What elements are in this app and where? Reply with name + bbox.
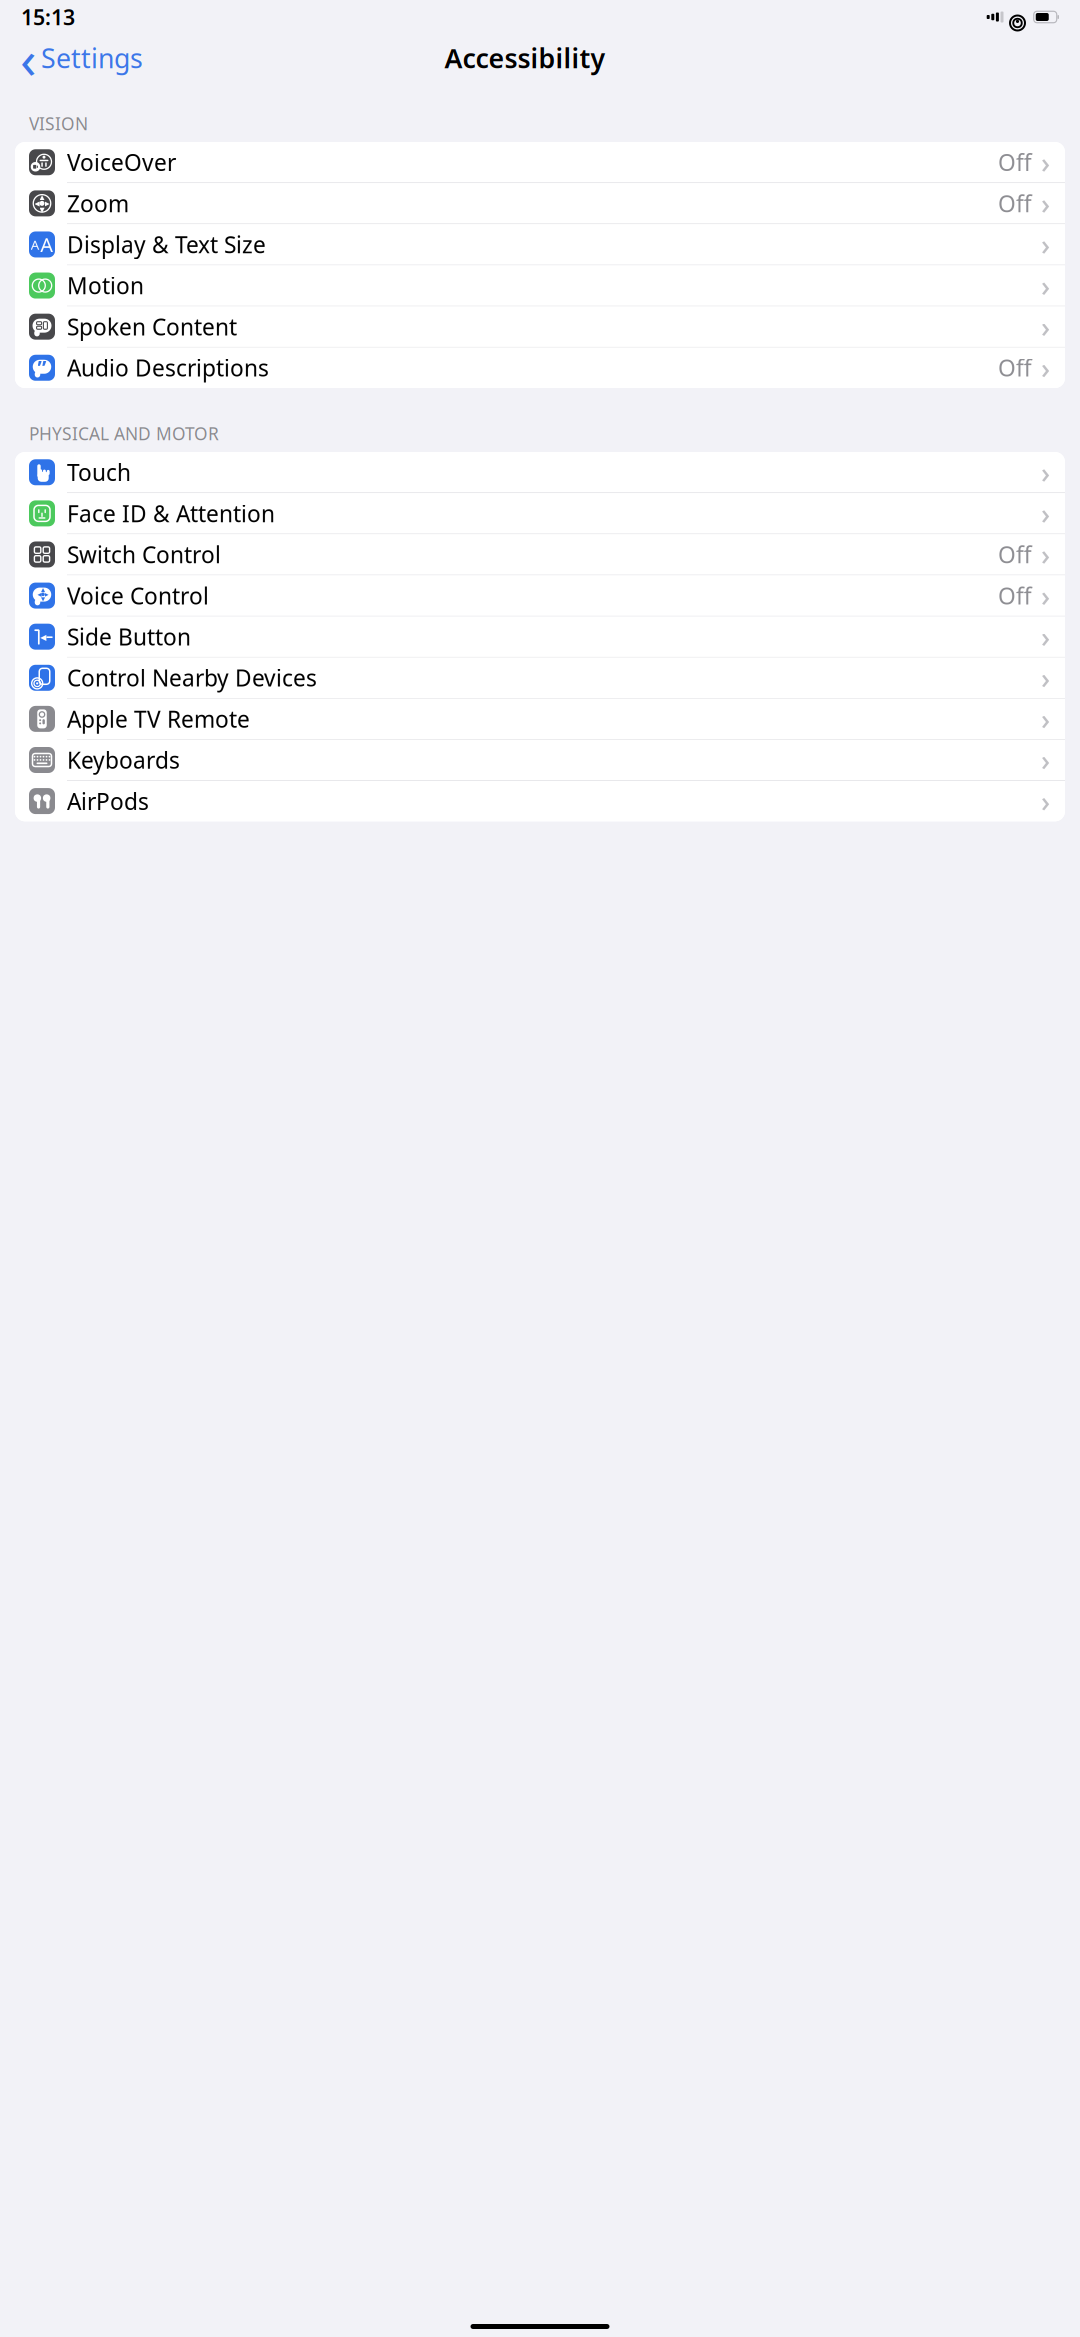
staticText: ▲ xyxy=(41,587,45,593)
staticText: › xyxy=(1041,495,1050,532)
staticText: Switch Control xyxy=(67,539,221,569)
staticText: ▼ xyxy=(39,206,44,213)
staticText: Audio Descriptions xyxy=(67,353,269,383)
staticText: ◀ xyxy=(34,200,39,207)
staticText: › xyxy=(1041,618,1050,655)
button[interactable]: Switch Control xyxy=(15,534,1065,575)
button[interactable]: A xyxy=(15,224,1065,265)
staticText: › xyxy=(1041,226,1050,263)
staticText: › xyxy=(1041,185,1050,222)
staticText: Off xyxy=(998,147,1032,177)
staticText: VISION xyxy=(29,112,88,135)
staticText: › xyxy=(1041,741,1050,779)
staticText: Control Nearby Devices xyxy=(67,663,317,693)
staticText: › xyxy=(1041,700,1050,737)
staticText: › xyxy=(1041,577,1050,614)
staticText: ▶ xyxy=(44,200,49,207)
staticText: › xyxy=(1041,267,1050,304)
staticText: A xyxy=(31,236,40,253)
staticText: › xyxy=(1041,536,1050,573)
staticText: Apple TV Remote xyxy=(67,704,250,734)
button[interactable]: ▲ xyxy=(15,575,1065,616)
staticText: ◀ xyxy=(37,591,41,597)
staticText: Voice Control xyxy=(67,580,209,611)
staticText: Motion xyxy=(67,270,144,301)
staticText: A xyxy=(40,231,53,258)
staticText: Keyboards xyxy=(67,745,180,775)
button[interactable]: Face ID & Attention xyxy=(15,493,1065,534)
staticText: Off xyxy=(998,353,1032,383)
button[interactable]: Motion xyxy=(15,265,1065,306)
staticText: › xyxy=(1041,782,1050,820)
staticText: Off xyxy=(998,580,1032,611)
staticText: ▲ xyxy=(39,193,44,201)
staticText: › xyxy=(1041,308,1050,345)
staticText: ‹ xyxy=(20,23,37,93)
staticText: Zoom xyxy=(67,188,129,218)
button[interactable]: Keyboards xyxy=(15,740,1065,781)
staticText: AirPods xyxy=(67,786,149,816)
staticText: Off xyxy=(998,539,1032,569)
button[interactable]: Apple TV Remote xyxy=(15,699,1065,740)
staticText: ◀ xyxy=(40,633,46,642)
staticText: ▼ xyxy=(41,596,45,602)
staticText: › xyxy=(1041,454,1050,491)
button[interactable]: VoiceOver xyxy=(15,142,1065,183)
staticText: › xyxy=(1041,144,1050,181)
staticText: ▶ xyxy=(45,591,49,597)
staticText: Spoken Content xyxy=(67,312,237,342)
button[interactable]: Touch xyxy=(15,452,1065,493)
staticText: Off xyxy=(998,188,1032,218)
button[interactable]: AirPods xyxy=(15,781,1065,821)
button[interactable]: ” xyxy=(15,347,1065,388)
staticText: Side Button xyxy=(67,622,191,652)
staticText: › xyxy=(1041,659,1050,696)
staticText: VoiceOver xyxy=(67,147,176,177)
staticText: › xyxy=(1041,349,1050,386)
staticText: Settings xyxy=(41,40,143,76)
button[interactable]: ◀ xyxy=(15,616,1065,657)
staticText: Accessibility xyxy=(444,40,605,76)
button[interactable]: ▲ xyxy=(15,183,1065,224)
staticText: 15:13 xyxy=(21,3,75,31)
button[interactable]: Spoken Content xyxy=(15,306,1065,347)
button[interactable]: ‹ xyxy=(16,19,147,97)
staticText: Display & Text Size xyxy=(67,229,266,259)
button[interactable]: Control Nearby Devices xyxy=(15,657,1065,699)
staticText: ” xyxy=(37,354,46,381)
staticText: Touch xyxy=(67,457,131,487)
staticText: Face ID & Attention xyxy=(67,498,275,528)
staticText: PHYSICAL AND MOTOR xyxy=(29,422,219,445)
